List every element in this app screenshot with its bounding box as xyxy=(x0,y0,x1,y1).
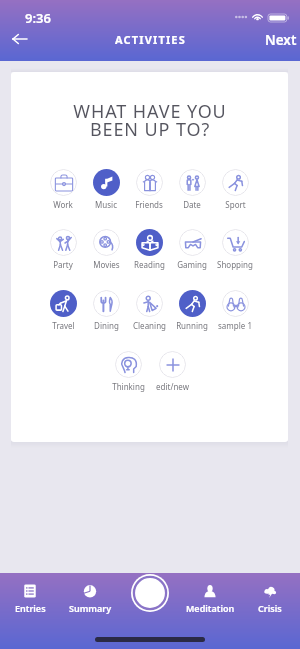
staticText: Date xyxy=(183,199,201,210)
button[interactable]: Party xyxy=(40,229,86,270)
button[interactable]: Running xyxy=(169,290,215,331)
button[interactable]: Gaming xyxy=(169,229,215,270)
staticText: Thinking xyxy=(112,381,145,392)
button[interactable]: Meditation xyxy=(180,582,240,626)
button[interactable]: edit/new xyxy=(149,351,195,392)
button[interactable]: Friends xyxy=(126,169,172,210)
staticText: Friends xyxy=(135,199,163,210)
staticText: 9:36 xyxy=(25,9,51,27)
staticText: Sport xyxy=(225,199,246,210)
button[interactable]: Work xyxy=(40,169,86,210)
staticText: Summary xyxy=(69,602,112,614)
button[interactable]: Reading xyxy=(126,229,172,270)
staticText: Travel xyxy=(52,320,75,331)
staticText: Movies xyxy=(93,259,120,270)
staticText: Shopping xyxy=(217,259,253,270)
button[interactable]: Crisis xyxy=(240,582,300,626)
staticText: Entries xyxy=(15,602,46,614)
button[interactable]: Thinking xyxy=(105,351,151,392)
button[interactable]: Summary xyxy=(60,582,120,626)
button[interactable]: Dining xyxy=(83,290,129,331)
staticText: sample 1 xyxy=(218,320,252,331)
staticText: Party xyxy=(53,259,73,270)
staticText: ACTIVITIES xyxy=(115,32,186,47)
button[interactable]: Travel xyxy=(40,290,86,331)
staticText: Reading xyxy=(134,259,165,270)
button[interactable]: Cleaning xyxy=(126,290,172,331)
button[interactable]: Next xyxy=(258,28,300,52)
staticText: Gaming xyxy=(177,259,207,270)
button[interactable]: sample 1 xyxy=(212,290,258,331)
staticText: edit/new xyxy=(156,381,189,392)
button[interactable]: Entries xyxy=(0,582,60,626)
staticText: Dining xyxy=(94,320,119,331)
button[interactable]: Music xyxy=(83,169,129,210)
staticText: Meditation xyxy=(186,602,235,614)
staticText: WHAT HAVE YOU BEEN UP TO? xyxy=(73,99,227,141)
staticText: Crisis xyxy=(258,602,282,614)
staticText: Music xyxy=(95,199,117,210)
staticText: Cleaning xyxy=(133,320,166,331)
staticText: Work xyxy=(53,199,73,210)
button[interactable]: Back xyxy=(2,22,36,56)
button[interactable]: Sport xyxy=(212,169,258,210)
button[interactable]: New entry xyxy=(131,574,169,612)
staticText: Running xyxy=(176,320,208,331)
staticText: Next xyxy=(265,31,297,49)
button[interactable]: Shopping xyxy=(212,229,258,270)
button[interactable]: Date xyxy=(169,169,215,210)
button[interactable]: Movies xyxy=(83,229,129,270)
